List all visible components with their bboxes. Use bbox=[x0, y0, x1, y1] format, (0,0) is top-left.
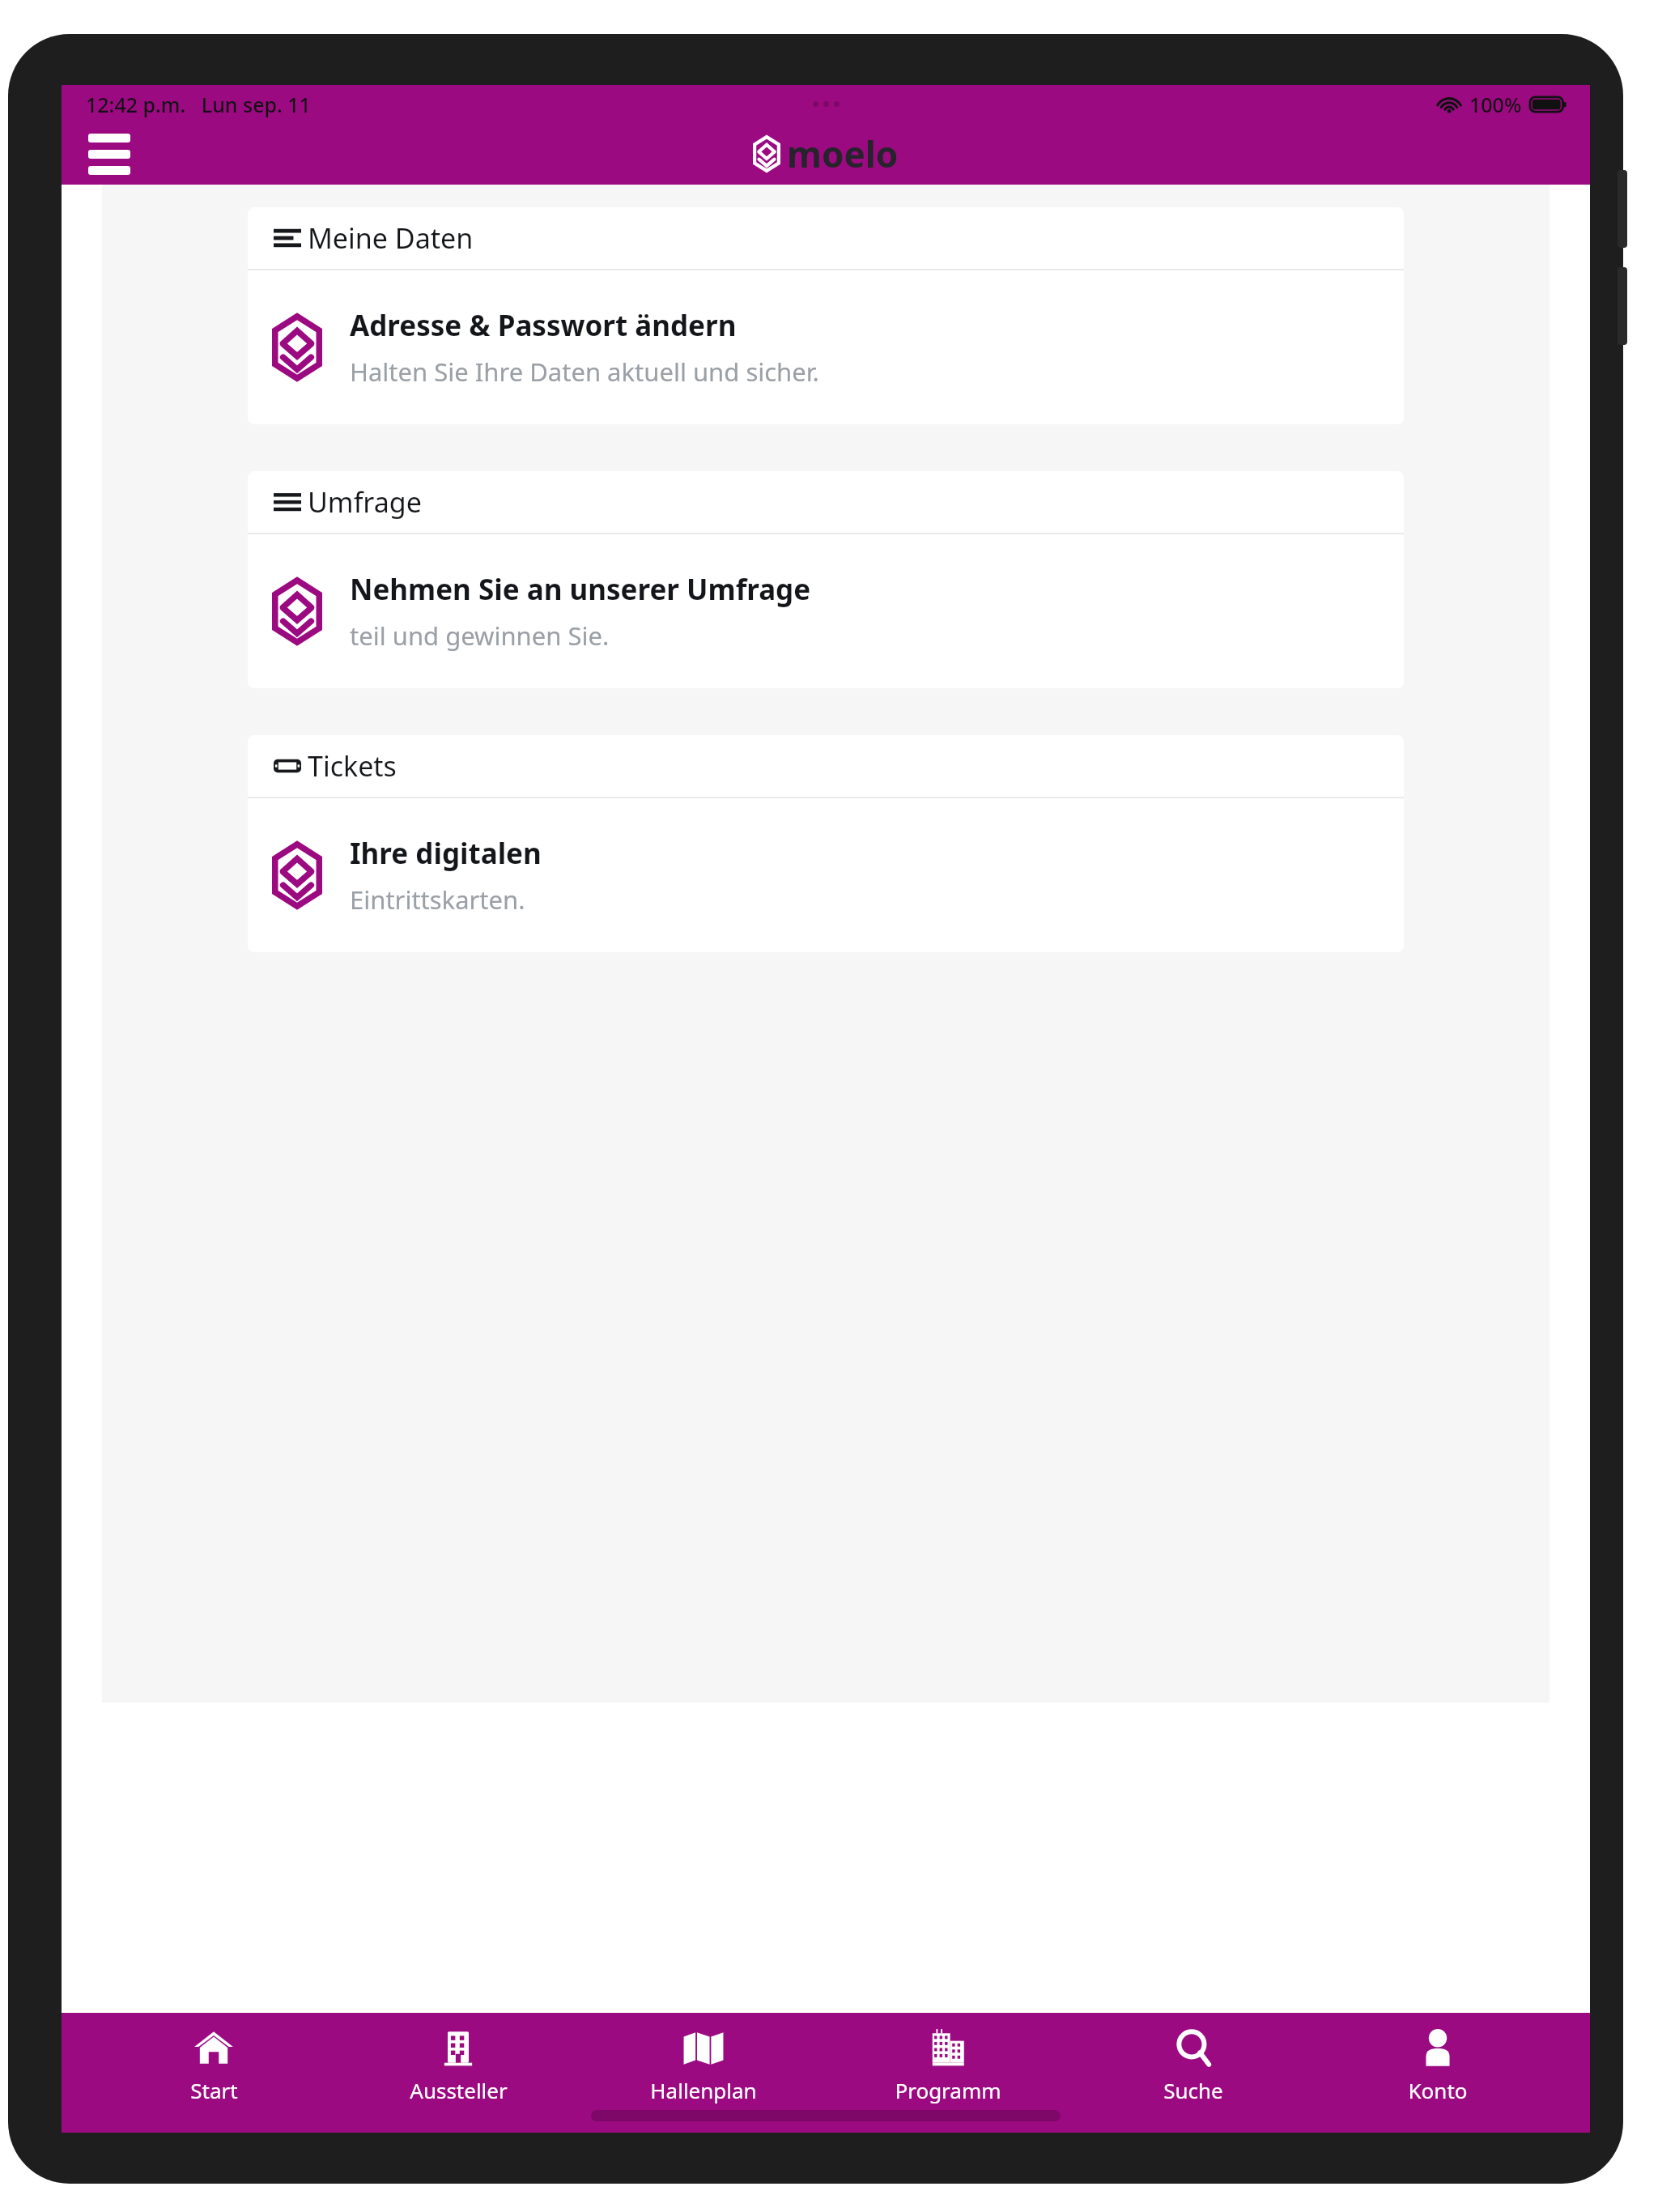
staticText: moelo bbox=[787, 130, 899, 178]
staticText: Hallenplan bbox=[650, 2076, 757, 2104]
button[interactable]: Start bbox=[121, 2021, 307, 2111]
staticText: teil und gewinnen Sie. bbox=[350, 619, 610, 653]
staticText: Umfrage bbox=[308, 483, 422, 521]
staticText: Start bbox=[190, 2076, 238, 2104]
staticText: Aussteller bbox=[410, 2076, 508, 2104]
staticText: Ihre digitalen bbox=[350, 834, 542, 873]
staticText: Meine Daten bbox=[308, 219, 474, 257]
button[interactable]: Menu bbox=[76, 127, 142, 181]
button[interactable]: Suche bbox=[1100, 2021, 1286, 2111]
button[interactable]: Umfrage bbox=[248, 471, 1404, 688]
button[interactable]: Tickets bbox=[248, 735, 1404, 952]
staticText: 100% bbox=[1469, 91, 1522, 118]
button[interactable]: Konto bbox=[1345, 2021, 1531, 2111]
button[interactable]: Aussteller bbox=[365, 2021, 551, 2111]
staticText: Nehmen Sie an unserer Umfrage bbox=[350, 570, 811, 609]
button[interactable]: Programm bbox=[855, 2021, 1041, 2111]
button[interactable]: Meine Daten bbox=[248, 207, 1404, 424]
staticText: Konto bbox=[1408, 2076, 1468, 2104]
staticText: Eintrittskarten. bbox=[350, 883, 525, 917]
staticText: 12:42 p.m. Lun sep. 11 bbox=[86, 91, 311, 118]
button[interactable]: Hallenplan bbox=[610, 2021, 797, 2111]
staticText: Halten Sie Ihre Daten aktuell und sicher… bbox=[350, 355, 819, 389]
staticText: Adresse & Passwort ändern bbox=[350, 306, 737, 345]
staticText: Suche bbox=[1163, 2076, 1223, 2104]
staticText: Programm bbox=[895, 2076, 1001, 2104]
staticText: Tickets bbox=[308, 747, 397, 785]
